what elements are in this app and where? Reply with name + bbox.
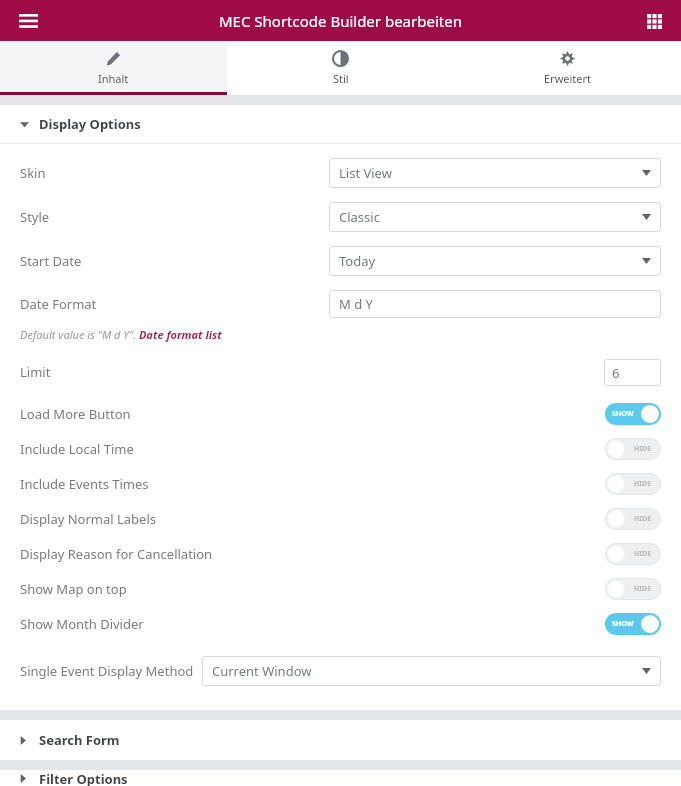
staticText: Load More Button <box>20 405 131 423</box>
button[interactable]: Load More Button <box>0 396 681 431</box>
staticText: Show Month Divider <box>20 615 144 633</box>
button[interactable]: Skin <box>0 158 681 188</box>
staticText: HIDE <box>634 549 652 559</box>
staticText: Erweitert <box>544 71 592 86</box>
staticText: Filter Options <box>39 770 128 786</box>
staticText: Display Options <box>39 115 141 133</box>
staticText: Skin <box>20 164 46 182</box>
button[interactable]: Include Local Time <box>0 431 681 466</box>
button[interactable]: Start Date <box>0 246 681 276</box>
button[interactable]: Display Options <box>0 105 681 143</box>
staticText: Start Date <box>20 252 82 270</box>
staticText: Default value is "M d Y". Date format li… <box>20 327 222 342</box>
button[interactable]: Stil <box>227 41 454 95</box>
staticText: 6 <box>612 364 620 382</box>
staticText: M d Y <box>339 295 373 313</box>
staticText: List View <box>339 164 392 182</box>
staticText: Today <box>339 252 376 270</box>
staticText: HIDE <box>634 479 652 489</box>
staticText: Single Event Display Method <box>20 662 194 680</box>
button[interactable]: Inhalt <box>0 41 227 95</box>
button[interactable]: Apps <box>637 4 671 38</box>
staticText: Current Window <box>212 662 312 680</box>
staticText: Search Form <box>39 731 120 749</box>
staticText: HIDE <box>634 584 652 594</box>
staticText: Include Events Times <box>20 475 149 493</box>
button[interactable]: Include Events Times <box>0 466 681 501</box>
staticText: SHOW <box>612 619 634 629</box>
staticText: Classic <box>339 208 380 226</box>
button[interactable]: Style <box>0 202 681 232</box>
staticText: HIDE <box>634 444 652 454</box>
button[interactable]: Menu <box>10 3 46 39</box>
button[interactable]: Show Month Divider <box>0 606 681 641</box>
staticText: Display Normal Labels <box>20 510 157 528</box>
staticText: Show Map on top <box>20 580 127 598</box>
staticText: MEC Shortcode Builder bearbeiten <box>219 11 462 31</box>
staticText: Display Reason for Cancellation <box>20 545 213 563</box>
button[interactable]: Filter Options <box>0 770 681 786</box>
button[interactable]: Search Form <box>0 720 681 760</box>
staticText: Date Format <box>20 295 97 313</box>
staticText: HIDE <box>634 514 652 524</box>
button[interactable]: Show Map on top <box>0 571 681 606</box>
button[interactable]: Display Normal Labels <box>0 501 681 536</box>
button[interactable]: Date Format <box>0 290 681 318</box>
staticText: Limit <box>20 363 51 381</box>
staticText: Stil <box>333 71 349 86</box>
staticText: SHOW <box>612 409 634 419</box>
staticText: Include Local Time <box>20 440 134 458</box>
button[interactable]: Limit <box>0 358 681 386</box>
button[interactable]: Display Reason for Cancellation <box>0 536 681 571</box>
button[interactable]: Erweitert <box>454 41 681 95</box>
staticText: Style <box>20 208 50 226</box>
button[interactable]: Single Event Display Method <box>0 656 681 686</box>
staticText: Inhalt <box>98 71 129 86</box>
